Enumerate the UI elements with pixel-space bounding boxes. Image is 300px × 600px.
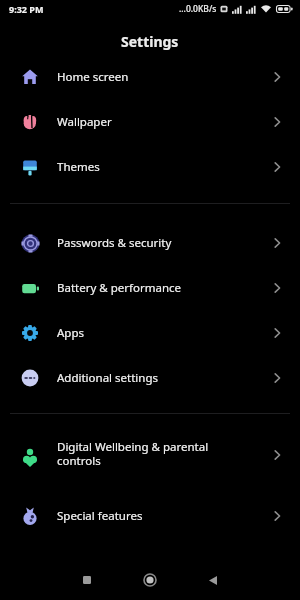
staticText: Wallpaper xyxy=(57,114,112,130)
button[interactable]: Special features xyxy=(0,493,300,538)
button[interactable]: Wallpaper xyxy=(0,99,300,144)
staticText: Themes xyxy=(57,159,100,175)
button[interactable]: Themes xyxy=(0,144,300,189)
staticText: 9:32 PM xyxy=(9,3,44,15)
staticText: Apps xyxy=(57,325,85,341)
staticText: Additional settings xyxy=(57,370,159,386)
button[interactable] xyxy=(195,562,231,598)
staticText: Battery & performance xyxy=(57,280,182,296)
button[interactable]: Home screen xyxy=(0,54,300,99)
button[interactable]: Apps xyxy=(0,310,300,355)
staticText: Settings xyxy=(121,32,179,51)
button[interactable]: Battery & performance xyxy=(0,265,300,310)
button[interactable] xyxy=(132,562,168,598)
button[interactable]: Digital Wellbeing & parental controls xyxy=(0,427,300,483)
staticText: Digital Wellbeing & parental controls xyxy=(57,439,209,468)
button[interactable]: Additional settings xyxy=(0,355,300,400)
staticText: ...0.0KB/s xyxy=(179,3,217,15)
staticText: Passwords & security xyxy=(57,235,172,251)
staticText: Special features xyxy=(57,508,143,524)
button[interactable] xyxy=(69,562,105,598)
button[interactable]: Passwords & security xyxy=(0,220,300,265)
staticText: Home screen xyxy=(57,69,129,85)
